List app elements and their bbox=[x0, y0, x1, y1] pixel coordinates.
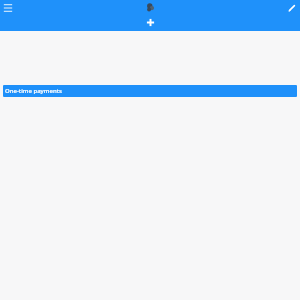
staticText: One-time payments bbox=[5, 87, 62, 95]
button[interactable]: Edit bbox=[286, 2, 298, 14]
button[interactable]: Menu bbox=[2, 2, 14, 14]
button[interactable]: One-time payments bbox=[3, 85, 297, 97]
button[interactable]: Add bbox=[143, 15, 157, 29]
button[interactable]: App logo bbox=[143, 0, 157, 14]
